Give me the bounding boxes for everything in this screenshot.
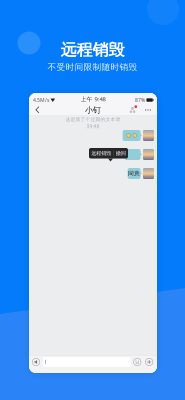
button[interactable]: Voice message: [30, 355, 42, 368]
staticText: 这是第了个过期的文本请: [65, 116, 120, 122]
staticText: 不受时间限制随时销毁: [47, 62, 137, 73]
staticText: 撤回: [116, 150, 126, 157]
button[interactable]: 远程销毁: [89, 148, 113, 158]
staticText: 09:48: [86, 123, 99, 129]
staticText: 4.5M/s: [33, 97, 49, 103]
button[interactable]: More: [142, 104, 154, 116]
staticText: 远程销毁: [60, 40, 124, 60]
button[interactable]: Back: [31, 104, 44, 116]
staticText: 小钉: [85, 105, 101, 115]
staticText: 同意: [128, 170, 140, 177]
button[interactable]: Emoji: [132, 355, 143, 368]
button[interactable]: 撤回: [114, 148, 128, 158]
button[interactable]: Group members: [127, 104, 138, 116]
button[interactable]: Add attachment: [144, 355, 155, 368]
staticText: 远程销毁: [91, 150, 111, 157]
staticText: 上午 9:48: [80, 95, 105, 103]
staticText: 87%: [135, 97, 145, 103]
